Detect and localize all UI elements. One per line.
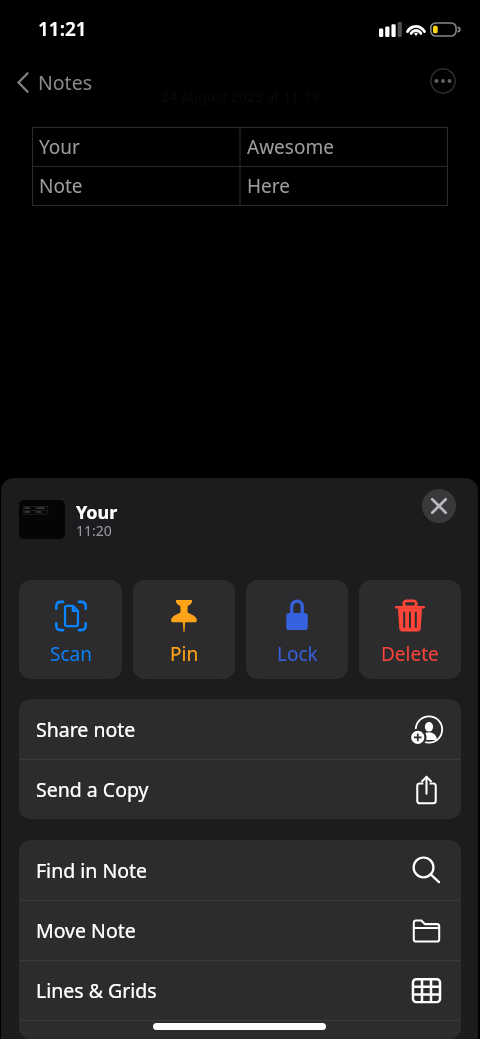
- button[interactable]: [19, 1021, 461, 1039]
- staticText: Lock: [277, 641, 318, 667]
- staticText: Lines & Grids: [36, 977, 157, 1004]
- staticText: 11:21: [38, 16, 87, 42]
- staticText: Your: [39, 134, 80, 160]
- staticText: Send a Copy: [36, 776, 149, 803]
- staticText: Your: [76, 500, 118, 525]
- staticText: Here: [247, 173, 290, 199]
- staticText: Notes: [38, 69, 92, 96]
- button[interactable]: Close: [422, 489, 456, 523]
- button[interactable]: Pin: [133, 580, 235, 679]
- button[interactable]: Lock: [246, 580, 348, 679]
- staticText: Move Note: [36, 917, 136, 944]
- button[interactable]: Find in Note: [19, 840, 461, 900]
- button[interactable]: Delete: [359, 580, 461, 679]
- button[interactable]: Share note: [19, 699, 461, 759]
- staticText: Note: [39, 173, 83, 199]
- button[interactable]: Lines & Grids: [19, 961, 461, 1020]
- staticText: Scan: [50, 641, 92, 667]
- staticText: Pin: [170, 641, 199, 667]
- button[interactable]: Move Note: [19, 901, 461, 960]
- staticText: 11:20: [76, 521, 112, 540]
- button[interactable]: More options: [430, 68, 456, 94]
- button[interactable]: Scan: [19, 580, 122, 679]
- staticText: Share note: [36, 716, 136, 743]
- button[interactable]: Send a Copy: [19, 760, 461, 819]
- staticText: Awesome: [247, 134, 334, 160]
- staticText: Find in Note: [36, 857, 148, 884]
- button[interactable]: Notes: [11, 63, 98, 102]
- staticText: Delete: [381, 641, 439, 667]
